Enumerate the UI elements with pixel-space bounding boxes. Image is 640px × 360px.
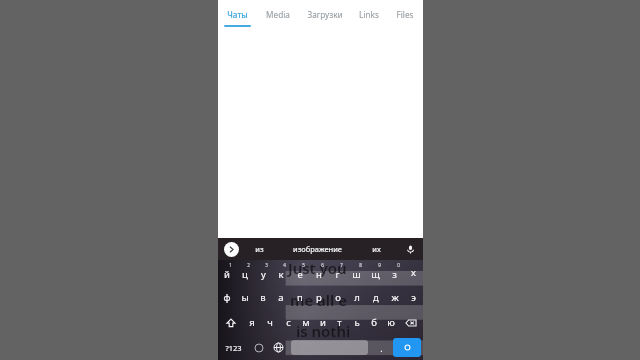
button[interactable]: Emoji	[249, 335, 268, 360]
button[interactable]: Space	[291, 340, 368, 355]
staticText: их	[372, 244, 381, 254]
button[interactable]: я	[243, 310, 261, 335]
staticText: х	[411, 266, 416, 279]
button[interactable]: с	[279, 310, 297, 335]
staticText: ф	[223, 291, 231, 304]
button[interactable]: из	[239, 238, 279, 260]
button[interactable]: 4	[272, 260, 290, 285]
staticText: р	[316, 291, 322, 304]
button[interactable]: Media	[257, 0, 298, 31]
button[interactable]: т	[331, 310, 348, 335]
button[interactable]: Files	[387, 0, 423, 31]
button[interactable]: Voice input	[397, 238, 423, 260]
staticText: .	[380, 342, 383, 354]
staticText: й	[224, 268, 230, 281]
button[interactable]: ж	[385, 285, 404, 310]
button[interactable]: .	[371, 335, 391, 360]
staticText: с	[286, 316, 291, 329]
button[interactable]: Shift	[218, 310, 243, 335]
button[interactable]: Change language	[268, 335, 288, 360]
button[interactable]: 9	[366, 260, 385, 285]
staticText: в	[260, 291, 266, 304]
button[interactable]: в	[254, 285, 272, 310]
button[interactable]: п	[290, 285, 309, 310]
button[interactable]: ь	[348, 310, 365, 335]
button[interactable]: ч	[261, 310, 279, 335]
button[interactable]: Чаты	[218, 0, 257, 31]
staticText: is nothi	[296, 321, 351, 341]
button[interactable]: их	[356, 238, 397, 260]
button[interactable]: 0	[385, 260, 404, 285]
button[interactable]: д	[366, 285, 385, 310]
button[interactable]: Links	[351, 0, 387, 31]
staticText: ч	[267, 316, 273, 329]
staticText: из	[255, 244, 264, 254]
staticText: г	[335, 268, 340, 281]
staticText: е	[297, 268, 303, 281]
staticText: 6	[321, 262, 324, 268]
staticText: 7	[340, 262, 343, 268]
button[interactable]: 7	[328, 260, 347, 285]
staticText: я	[249, 316, 255, 329]
staticText: Media	[266, 9, 290, 20]
button[interactable]: ю	[382, 310, 399, 335]
staticText: ю	[387, 316, 395, 329]
staticText: 3	[265, 262, 268, 268]
staticText: Чаты	[227, 9, 248, 20]
button[interactable]: Загрузки	[298, 0, 351, 31]
button[interactable]: б	[365, 310, 382, 335]
staticText: Just you	[288, 258, 347, 278]
button[interactable]: ?123	[218, 335, 249, 360]
button[interactable]: Expand suggestions	[224, 242, 239, 257]
staticText: 5	[302, 262, 305, 268]
button[interactable]: 6	[309, 260, 328, 285]
button[interactable]: м	[297, 310, 314, 335]
staticText: 4	[283, 262, 286, 268]
staticText: д	[373, 291, 379, 304]
staticText: Загрузки	[307, 9, 343, 20]
staticText: ь	[354, 316, 360, 329]
staticText: о	[335, 291, 341, 304]
staticText: э	[411, 291, 416, 304]
button[interactable]: 8	[347, 260, 366, 285]
staticText: н	[316, 268, 322, 281]
staticText: ?123	[225, 343, 242, 353]
staticText: Files	[396, 9, 414, 20]
staticText: ц	[242, 268, 248, 281]
button[interactable]: Backspace	[399, 310, 423, 335]
staticText: me all e	[290, 290, 348, 310]
staticText: ш	[352, 268, 361, 281]
button[interactable]: 3	[254, 260, 272, 285]
staticText: б	[371, 316, 377, 329]
staticText: а	[278, 291, 284, 304]
button[interactable]: 5	[290, 260, 309, 285]
button[interactable]: 1	[218, 260, 236, 285]
staticText: 1	[229, 262, 232, 268]
button[interactable]: э	[404, 285, 423, 310]
staticText: з	[392, 268, 397, 281]
staticText: ы	[241, 291, 249, 304]
staticText: 9	[378, 262, 381, 268]
button[interactable]: ф	[218, 285, 236, 310]
button[interactable]: о	[328, 285, 347, 310]
staticText: и	[320, 316, 326, 329]
staticText: Links	[359, 9, 379, 20]
staticText: изображение	[293, 244, 342, 254]
button[interactable]: и	[314, 310, 331, 335]
button[interactable]: р	[309, 285, 328, 310]
staticText: к	[278, 268, 284, 281]
staticText: 2	[247, 262, 250, 268]
staticText: 0	[397, 262, 400, 268]
staticText: т	[337, 316, 342, 329]
button[interactable]: Enter	[393, 338, 421, 357]
staticText: 8	[359, 262, 362, 268]
staticText: п	[297, 291, 303, 304]
staticText: щ	[371, 268, 380, 281]
button[interactable]: х	[404, 260, 423, 285]
staticText: у	[261, 268, 266, 281]
button[interactable]: 2	[236, 260, 254, 285]
button[interactable]: л	[347, 285, 366, 310]
button[interactable]: изображение	[279, 238, 356, 260]
button[interactable]: а	[272, 285, 290, 310]
button[interactable]: ы	[236, 285, 254, 310]
